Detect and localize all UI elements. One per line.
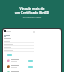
button[interactable] bbox=[7, 54, 12, 56]
button[interactable] bbox=[3, 64, 61, 70]
button[interactable] bbox=[3, 70, 61, 72]
staticText: um Certificado BirdID bbox=[0, 11, 64, 15]
button[interactable] bbox=[3, 58, 61, 64]
staticText: no mesmo lugar bbox=[0, 15, 64, 18]
staticText: Vincule mais de bbox=[0, 7, 64, 11]
